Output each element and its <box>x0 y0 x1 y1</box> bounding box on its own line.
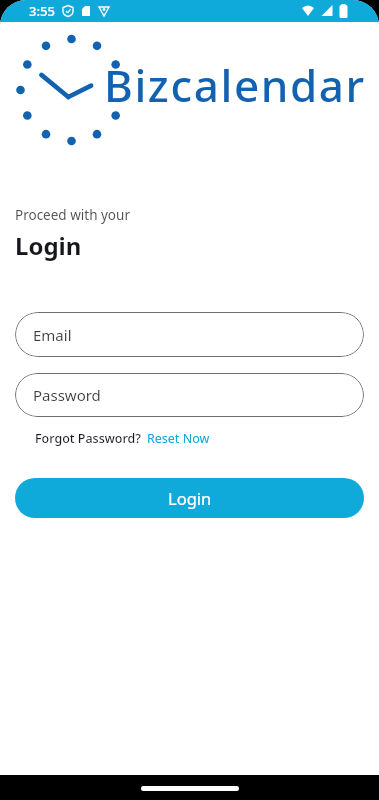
staticText: Bizcalendar <box>104 55 366 115</box>
staticText: 3:55 <box>29 2 55 20</box>
button[interactable]: Login <box>15 478 364 518</box>
staticText: Login <box>168 487 212 509</box>
button[interactable]: Reset Now <box>147 430 210 447</box>
staticText: Proceed with your <box>15 206 130 224</box>
button[interactable]: Email <box>15 312 364 357</box>
staticText: Forgot Password? <box>35 430 141 447</box>
staticText: Password <box>33 385 101 405</box>
button[interactable]: Password <box>15 373 364 417</box>
staticText: Login <box>15 229 82 262</box>
staticText: Email <box>33 325 72 345</box>
